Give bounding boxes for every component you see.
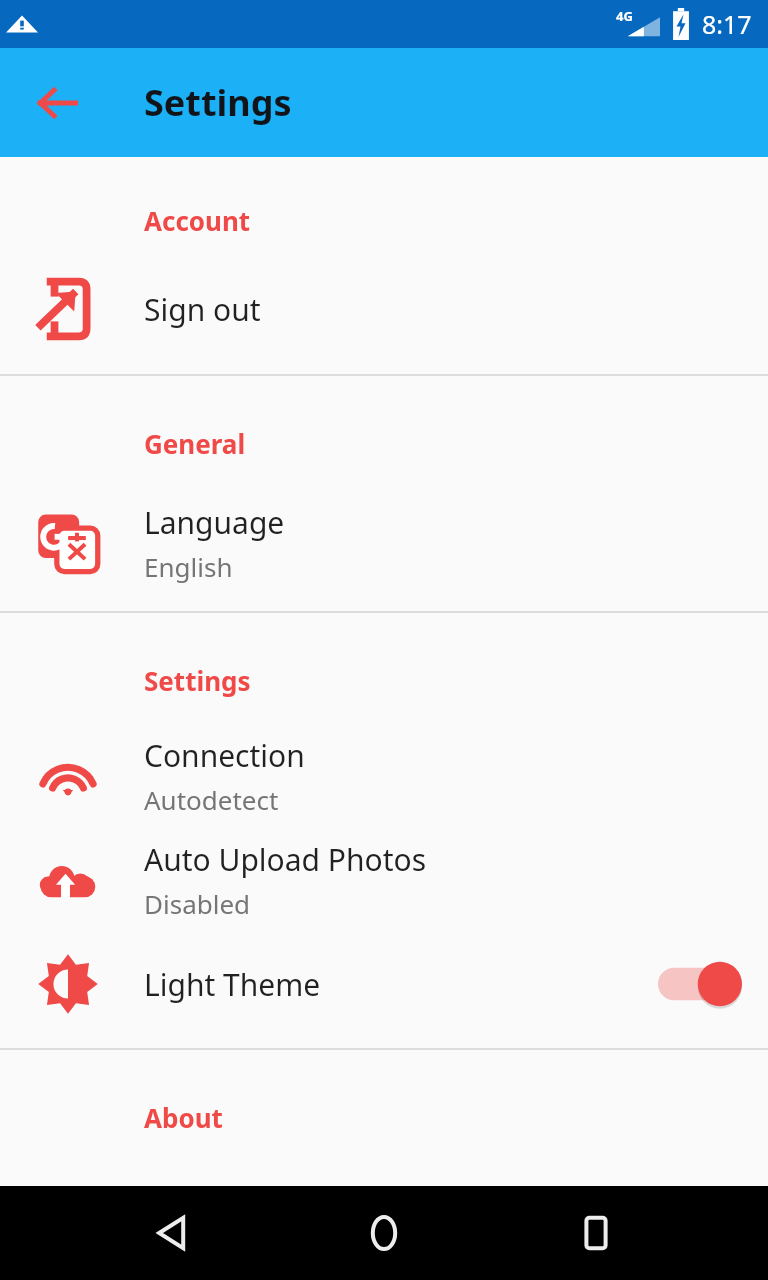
button[interactable]: Back bbox=[24, 69, 92, 137]
staticText: Auto Upload Photos bbox=[144, 839, 427, 880]
button[interactable]: Light Theme toggle bbox=[658, 957, 742, 1011]
staticText: Light Theme bbox=[144, 964, 321, 1005]
staticText: Language bbox=[144, 502, 285, 543]
button[interactable]: Home bbox=[344, 1193, 424, 1273]
button[interactable]: Connection bbox=[0, 724, 768, 828]
staticText: Sign out bbox=[144, 289, 261, 330]
button[interactable]: Auto Upload Photos bbox=[0, 828, 768, 932]
staticText: About bbox=[144, 1100, 223, 1135]
staticText: Settings bbox=[144, 663, 251, 698]
button[interactable]: Back bbox=[132, 1193, 212, 1273]
button[interactable]: Language bbox=[0, 491, 768, 595]
staticText: Autodetect bbox=[144, 782, 279, 817]
button[interactable]: Sign out bbox=[0, 262, 768, 356]
staticText: Connection bbox=[144, 735, 305, 776]
button[interactable]: Recents bbox=[556, 1193, 636, 1273]
staticText: Account bbox=[144, 203, 251, 238]
staticText: General bbox=[144, 426, 246, 461]
staticText: Disabled bbox=[144, 886, 251, 921]
staticText: 8:17 bbox=[702, 7, 752, 41]
staticText: Settings bbox=[144, 78, 292, 127]
staticText: 4G bbox=[616, 7, 633, 25]
button[interactable]: Light Theme bbox=[0, 932, 768, 1036]
staticText: English bbox=[144, 549, 233, 584]
